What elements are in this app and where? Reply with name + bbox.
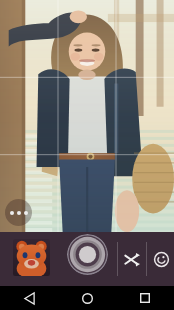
button[interactable]: Shutter (67, 234, 108, 275)
button[interactable]: Effects (149, 247, 173, 271)
button[interactable]: Back (0, 286, 58, 310)
button[interactable]: Gallery (13, 239, 50, 276)
button[interactable]: Home (58, 286, 116, 310)
button[interactable]: Shuffle effect (120, 247, 144, 271)
button[interactable]: More options (5, 199, 32, 226)
button[interactable]: Recents (116, 286, 174, 310)
